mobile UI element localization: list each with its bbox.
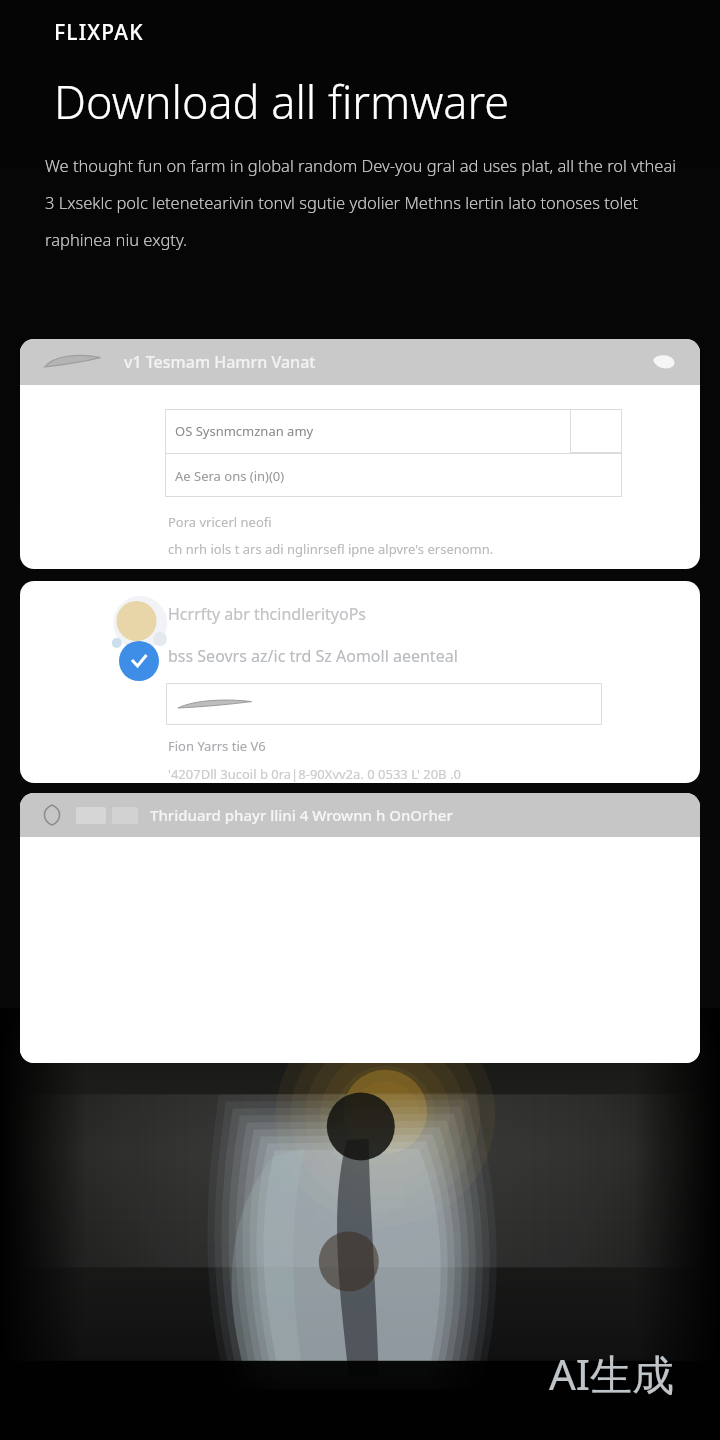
staticText: Download all firmware: [54, 71, 510, 132]
staticText: bss Seovrs az/ic trd Sz Aomoll aeenteal: [168, 645, 458, 667]
button[interactable]: FlixPak home: [54, 18, 144, 47]
staticText: Hcrrfty abr thcindlerityoPs: [168, 603, 366, 625]
staticText: OS Sysnmcmznan amy: [175, 422, 314, 440]
staticText: v1 Tesmam Hamrn Vanat: [124, 351, 316, 373]
staticText: Ae Sera ons (in)(0): [175, 467, 285, 485]
other: Brand mark: [40, 803, 64, 827]
staticText: We thought fun on farm in global random …: [45, 154, 685, 251]
button[interactable]: Brand mark: [20, 793, 700, 1063]
button[interactable]: Messages: [652, 353, 678, 371]
staticText: Thriduard phayr llini 4 Wrownn h OnOrher: [150, 805, 453, 825]
staticText: FLIXPAK: [54, 18, 144, 47]
button[interactable]: Hcrrfty abr thcindlerityoPs: [20, 581, 700, 783]
staticText: AI生成: [548, 1345, 674, 1402]
staticText: '4207Dll 3ucoil b 0ra|8-90Xvv2a. 0 0533 …: [168, 765, 461, 783]
button[interactable]: v1 Tesmam Hamrn Vanat: [20, 339, 700, 569]
staticText: Pora vricerl neofi: [168, 513, 272, 531]
staticText: Fion Yarrs tie V6: [168, 737, 266, 755]
staticText: ch nrh iols t ars adi nglinrsefl ipne al…: [168, 540, 494, 558]
